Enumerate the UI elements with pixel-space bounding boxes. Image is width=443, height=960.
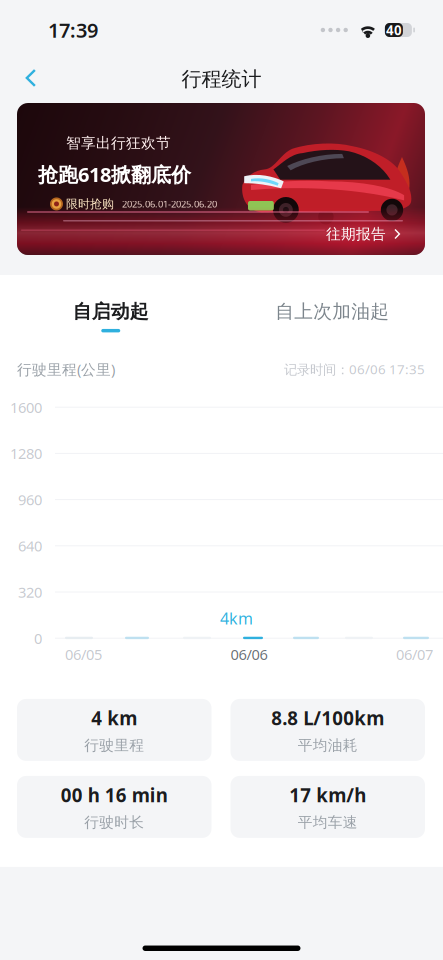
staticText: 06/05: [65, 645, 102, 664]
staticText: 06/06: [230, 645, 267, 664]
staticText: 行驶里程(公里): [17, 359, 115, 379]
staticText: 960: [18, 490, 42, 509]
staticText: 平均车速: [298, 813, 358, 831]
staticText: 00 h 16 min: [61, 782, 168, 807]
staticText: 1280: [10, 444, 42, 463]
staticText: 17 km/h: [289, 782, 366, 807]
staticText: 记录时间：06/06 17:35: [284, 360, 425, 378]
staticText: 2025.06.01-2025.06.20: [122, 198, 217, 210]
staticText: 320: [18, 582, 42, 602]
staticText: 8.8 L/100km: [271, 705, 384, 730]
staticText: 行驶时长: [84, 813, 144, 831]
staticText: 640: [18, 536, 42, 556]
staticText: 0: [34, 628, 42, 648]
staticText: 行驶里程: [84, 736, 144, 754]
button[interactable]: Back: [10, 58, 52, 98]
button[interactable]: 自启动起: [0, 300, 221, 332]
staticText: 限时抢购: [66, 197, 114, 211]
staticText: 智享出行狂欢节: [66, 134, 171, 152]
button[interactable]: 自上次加油起: [221, 300, 443, 332]
staticText: 06/07: [396, 645, 433, 664]
staticText: 1600: [10, 397, 42, 417]
staticText: 自上次加油起: [275, 300, 389, 323]
staticText: 40: [386, 21, 402, 39]
staticText: 行程统计: [181, 67, 261, 91]
staticText: 平均油耗: [298, 736, 358, 754]
staticText: 4km: [220, 608, 253, 629]
button[interactable]: 往期报告: [312, 213, 425, 255]
staticText: 抢跑618掀翻底价: [38, 161, 191, 188]
staticText: 17:39: [48, 17, 98, 43]
staticText: 往期报告: [326, 225, 386, 243]
staticText: 4 km: [91, 705, 137, 730]
staticText: 自启动起: [73, 300, 149, 323]
